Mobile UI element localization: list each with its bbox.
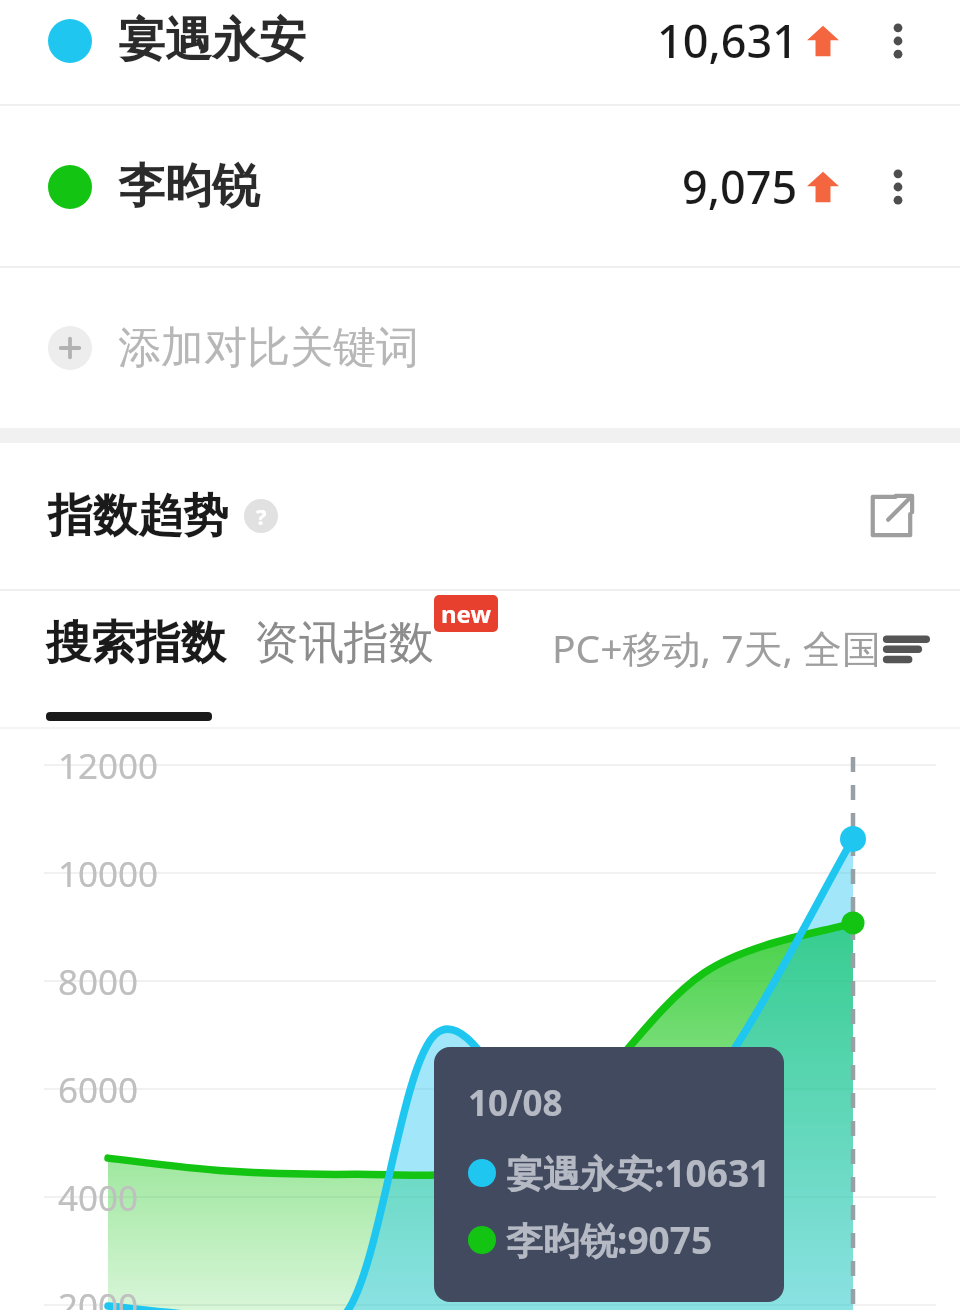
- staticText: ?: [256, 501, 267, 531]
- staticText: 8000: [58, 958, 139, 1006]
- staticText: new: [441, 597, 491, 630]
- staticText: 指数趋势: [48, 488, 228, 545]
- staticText: 10000: [58, 850, 159, 898]
- button[interactable]: 搜索指数: [46, 615, 226, 672]
- button[interactable]: 更多选项: [876, 19, 920, 63]
- button[interactable]: 资讯指数: [254, 615, 498, 672]
- staticText: 10/08: [468, 1079, 563, 1127]
- staticText: 李昀锐:9075: [506, 1214, 713, 1265]
- staticText: 12000: [58, 742, 159, 790]
- staticText: 6000: [58, 1066, 139, 1114]
- staticText: PC+移动, 7天, 全国: [552, 621, 882, 674]
- staticText: 李昀锐: [118, 157, 259, 216]
- staticText: 资讯指数: [254, 615, 434, 672]
- staticText: 10,631: [657, 10, 798, 71]
- staticText: 宴遇永安:10631: [506, 1147, 771, 1198]
- button[interactable]: 添加对比关键词: [0, 268, 960, 428]
- staticText: 添加对比关键词: [118, 321, 419, 375]
- button[interactable]: 分享: [862, 487, 920, 545]
- button[interactable]: 帮助: [244, 499, 278, 533]
- button[interactable]: 宴遇永安: [0, 0, 960, 104]
- button[interactable]: 李昀锐: [0, 106, 960, 266]
- staticText: 宴遇永安: [118, 11, 306, 70]
- staticText: 搜索指数: [46, 615, 226, 672]
- button[interactable]: PC+移动, 7天, 全国: [552, 621, 928, 674]
- staticText: 4000: [58, 1174, 139, 1222]
- button[interactable]: 更多选项: [876, 165, 920, 209]
- staticText: 9,075: [682, 156, 798, 217]
- staticText: 2000: [58, 1282, 139, 1310]
